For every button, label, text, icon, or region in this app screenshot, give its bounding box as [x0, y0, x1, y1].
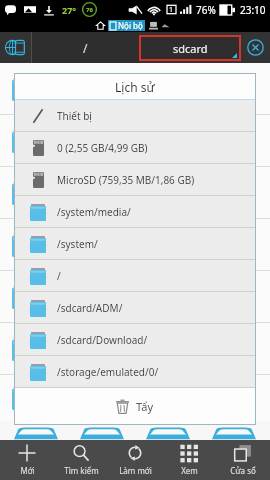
button[interactable]: Thiết bị	[15, 100, 255, 131]
staticText: Download	[50, 334, 112, 352]
staticText: DCIM	[50, 282, 84, 300]
staticText: /system/	[57, 237, 98, 251]
button[interactable]: sdcard	[139, 35, 241, 61]
button[interactable]: Làm mới	[108, 440, 162, 480]
staticText: MicroSD (759,35 MB/1,86 GB)	[57, 173, 195, 187]
staticText: /	[83, 40, 88, 56]
staticText: backups	[50, 178, 101, 196]
button[interactable]: Alarms	[0, 63, 270, 114]
staticText: Làm mới	[119, 465, 152, 476]
button[interactable]: Books	[0, 219, 270, 270]
button[interactable]: Cửa sổ	[216, 440, 270, 480]
staticText: Movies	[50, 383, 93, 401]
button[interactable]: Download	[0, 323, 270, 374]
button[interactable]: Mới	[0, 440, 54, 480]
button[interactable]: /sdcard/ADM/	[15, 292, 255, 323]
button[interactable]: /sdcard/Download/	[15, 324, 255, 355]
staticText: Tẩy	[136, 399, 154, 414]
button[interactable]: /system/	[15, 228, 255, 259]
button[interactable]: Movies	[0, 375, 270, 421]
staticText: Lịch sử	[115, 79, 155, 95]
button[interactable]: Xem	[162, 440, 216, 480]
staticText: Cửa sổ	[230, 465, 256, 476]
button[interactable]: 0 (2,55 GB/4,99 GB)	[15, 132, 255, 163]
staticText: 12-08-2017 19:27	[50, 248, 123, 260]
button[interactable]: /system/media/	[15, 196, 255, 227]
button[interactable]	[146, 426, 190, 440]
staticText: 1	[169, 5, 174, 15]
staticText: 27°	[62, 4, 77, 16]
staticText: 23:10	[240, 3, 266, 17]
button[interactable]: /	[15, 260, 255, 291]
button[interactable]: /storage/emulated/0/	[15, 356, 255, 387]
button[interactable]: Storage devices	[0, 32, 31, 63]
staticText: /system/media/	[57, 205, 131, 219]
button[interactable]: DCIM	[0, 271, 270, 322]
staticText: sdcard	[173, 41, 208, 56]
staticText: 76	[86, 6, 93, 14]
staticText: 30-10-2017 17:58	[50, 401, 123, 413]
button[interactable]	[80, 426, 124, 440]
staticText: Tìm kiếm	[64, 465, 99, 476]
staticText: /	[57, 269, 61, 283]
button[interactable]	[212, 426, 256, 440]
button[interactable]: Close	[241, 32, 270, 63]
staticText: 0 (2,55 GB/4,99 GB)	[57, 141, 148, 155]
staticText: Android	[50, 126, 99, 144]
button[interactable]: backups	[0, 167, 270, 218]
staticText: /sdcard/Download/	[57, 333, 148, 347]
staticText: Thiết bị	[57, 109, 92, 123]
button[interactable]: Tìm kiếm	[54, 440, 108, 480]
staticText: 21-11-2017 08:16	[50, 352, 123, 364]
staticText: /storage/emulated/0/	[57, 365, 159, 379]
button[interactable]: Tẩy	[15, 388, 255, 424]
staticText: Nội bộ	[118, 20, 143, 31]
staticText: /sdcard/ADM/	[57, 301, 123, 315]
button[interactable]: /	[32, 32, 139, 63]
staticText: 18-11-2017 22:41	[50, 300, 123, 312]
button[interactable]	[14, 426, 58, 440]
button[interactable]: MicroSD (759,35 MB/1,86 GB)	[15, 164, 255, 195]
staticText: Books	[50, 230, 88, 248]
staticText: Mới	[20, 465, 35, 476]
staticText: Xem	[181, 465, 198, 476]
staticText: 27-09-2017 15:12	[50, 144, 123, 156]
staticText: 76%	[196, 3, 216, 17]
staticText: 10-10-2017 21:45	[50, 92, 123, 104]
button[interactable]: Android	[0, 115, 270, 166]
